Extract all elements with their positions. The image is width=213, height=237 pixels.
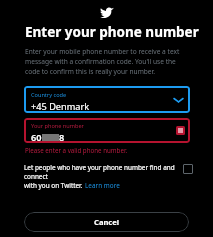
staticText: Your phone number bbox=[31, 122, 84, 130]
staticText: Enter your mobile phone number to receiv… bbox=[25, 47, 190, 75]
staticText: Let people who have your phone number fi… bbox=[24, 163, 177, 181]
other: Allow discovery by phone number bbox=[183, 164, 193, 174]
button[interactable]: Learn more bbox=[85, 181, 120, 190]
staticText: with you on Twitter. bbox=[24, 181, 85, 190]
staticText: 8 bbox=[59, 131, 65, 143]
staticText: Country code bbox=[31, 91, 67, 99]
button[interactable]: Cancel bbox=[24, 212, 189, 232]
other: Select country code bbox=[174, 97, 183, 103]
staticText: 60 bbox=[31, 131, 42, 143]
staticText: +45 Denmark bbox=[31, 100, 90, 113]
other: Clear phone number bbox=[176, 126, 185, 135]
button[interactable]: Let people who have your phone number fi… bbox=[24, 163, 193, 190]
staticText: Please enter a valid phone number. bbox=[25, 146, 128, 154]
staticText: Enter your phone number bbox=[25, 23, 199, 41]
button[interactable]: Your phone number bbox=[24, 118, 190, 143]
staticText: Cancel bbox=[94, 217, 120, 227]
button[interactable]: Country code bbox=[24, 86, 190, 113]
